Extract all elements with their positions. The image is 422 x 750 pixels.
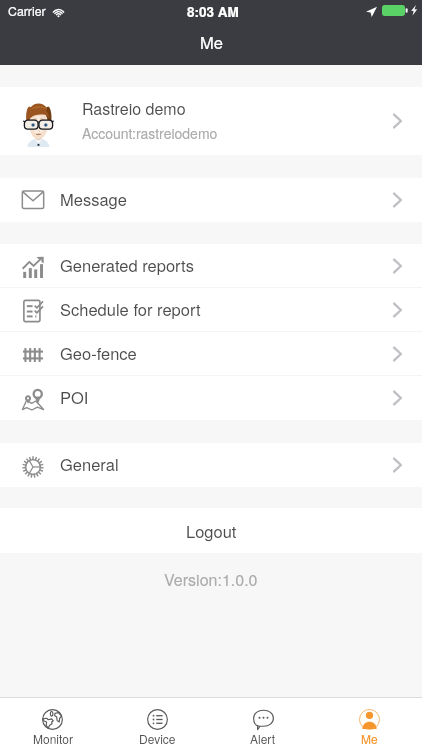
button[interactable]: POI: [0, 376, 422, 420]
button[interactable]: Logout: [0, 508, 422, 553]
other: Battery: [382, 5, 408, 16]
button[interactable]: Schedule for report: [0, 288, 422, 332]
staticText: Rastreio demo: [82, 97, 186, 120]
other: Location: [366, 6, 377, 17]
staticText: Message: [60, 187, 127, 211]
staticText: Account:rastreiodemo: [82, 123, 218, 143]
button[interactable]: Monitor: [0, 698, 105, 750]
staticText: Monitor: [33, 730, 73, 747]
staticText: Me: [361, 730, 378, 747]
staticText: Schedule for report: [60, 297, 201, 321]
other: Charging: [410, 4, 418, 16]
staticText: Alert: [250, 730, 276, 747]
staticText: Generated reports: [60, 253, 194, 277]
staticText: POI: [60, 385, 89, 409]
button[interactable]: General: [0, 443, 422, 487]
button[interactable]: Alert: [210, 698, 316, 750]
button[interactable]: Generated reports: [0, 244, 422, 288]
button[interactable]: Message: [0, 178, 422, 222]
staticText: Me: [200, 30, 223, 54]
staticText: Carrier: [8, 2, 46, 20]
staticText: Device: [139, 730, 176, 747]
button[interactable]: Me: [316, 698, 422, 750]
staticText: General: [60, 452, 119, 476]
button[interactable]: Rastreio demo: [0, 87, 422, 155]
staticText: Logout: [186, 519, 237, 543]
staticText: 8:03 AM: [187, 2, 239, 21]
button[interactable]: Geo-fence: [0, 332, 422, 376]
button[interactable]: Device: [105, 698, 210, 750]
staticText: Geo-fence: [60, 341, 137, 365]
staticText: Version:1.0.0: [164, 568, 258, 591]
